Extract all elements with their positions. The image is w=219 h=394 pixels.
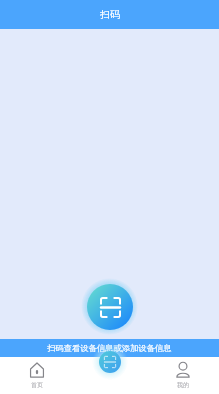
staticText: 首页: [31, 381, 43, 389]
button[interactable]: 首页: [0, 357, 73, 394]
button[interactable]: 我的: [146, 357, 219, 394]
staticText: 扫码: [100, 8, 120, 21]
staticText: 扫码查看设备信息或添加设备信息: [47, 343, 172, 353]
staticText: 我的: [177, 381, 189, 389]
button[interactable]: 扫码: [87, 284, 133, 330]
button[interactable]: 扫码: [99, 351, 121, 373]
